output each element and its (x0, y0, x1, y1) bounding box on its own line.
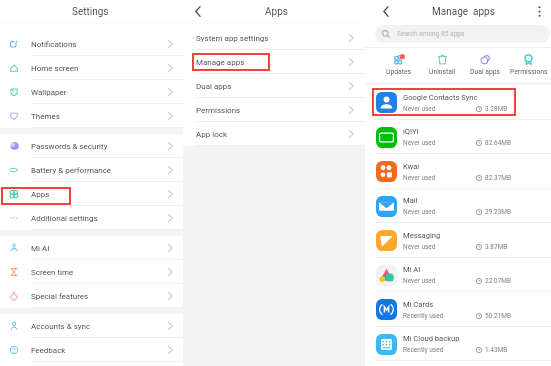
staticText: Permissions (510, 68, 548, 76)
staticText: Permissions (196, 106, 241, 115)
button[interactable]: More options (527, 0, 551, 23)
button[interactable]: Kwai (365, 154, 551, 189)
button[interactable]: Additional settings (0, 206, 183, 230)
staticText: Notifications (31, 40, 77, 49)
staticText: Google Contacts Sync (403, 93, 478, 102)
staticText: Themes (31, 112, 60, 121)
staticText: Never used (403, 139, 436, 147)
staticText: Updates (386, 68, 412, 76)
button[interactable]: Dual apps (464, 48, 507, 82)
staticText: Recently used (403, 346, 444, 354)
staticText: Dual apps (196, 82, 232, 91)
staticText: Mi Cards (403, 300, 434, 309)
button[interactable]: Mail (365, 189, 551, 223)
button[interactable]: Back (183, 0, 201, 23)
button[interactable]: Accounts & sync (0, 314, 183, 338)
staticText: 82.37MB (485, 174, 512, 182)
button[interactable]: Feedback (0, 338, 183, 362)
button[interactable]: Manage apps (183, 50, 365, 74)
button[interactable]: Mi AI (365, 258, 551, 292)
staticText: Manage apps (196, 58, 245, 67)
button[interactable]: Dual apps (183, 74, 365, 98)
staticText: Never used (403, 174, 436, 182)
staticText: App lock (196, 130, 227, 139)
button[interactable]: Permissions (507, 48, 550, 82)
button[interactable]: Wallpaper (0, 80, 183, 104)
staticText: 22.07MB (485, 277, 512, 285)
staticText: 1.43MB (485, 346, 508, 354)
staticText: Apps (265, 6, 288, 18)
button[interactable]: Messaging (365, 223, 551, 258)
staticText: Recently used (403, 312, 444, 320)
staticText: iQIYI (403, 127, 419, 136)
staticText: Special features (31, 292, 89, 301)
button[interactable]: Notifications (0, 32, 183, 56)
button[interactable]: iQIYI (365, 120, 551, 154)
staticText: 3.28MB (485, 105, 508, 113)
staticText: Settings (72, 6, 109, 18)
button[interactable]: Search among 85 apps (375, 25, 550, 43)
staticText: Manage apps (432, 6, 495, 18)
staticText: Battery & performance (31, 166, 112, 175)
button[interactable]: Back (365, 0, 389, 23)
staticText: Dual apps (470, 68, 501, 76)
button[interactable]: Mi Cloud backup (365, 327, 551, 361)
staticText: Never used (403, 277, 436, 285)
staticText: Never used (403, 105, 436, 113)
button[interactable]: Themes (0, 104, 183, 128)
staticText: Mi AI (403, 265, 421, 274)
button[interactable]: Passwords & security (0, 134, 183, 158)
staticText: Search among 85 apps (397, 30, 465, 38)
staticText: 29.23MB (485, 208, 512, 216)
staticText: Wallpaper (31, 88, 67, 97)
staticText: Never used (403, 208, 436, 216)
button[interactable]: Home screen (0, 56, 183, 80)
button[interactable]: Permissions (183, 98, 365, 122)
staticText: 3.87MB (485, 243, 508, 251)
button[interactable]: Uninstall (421, 48, 464, 82)
staticText: Accounts & sync (31, 322, 91, 331)
staticText: Feedback (31, 346, 66, 355)
staticText: 82.64MB (485, 139, 512, 147)
button[interactable]: Screen time (0, 260, 183, 284)
staticText: 50.21MB (485, 312, 512, 320)
button[interactable]: Special features (0, 284, 183, 308)
staticText: Uninstall (429, 68, 456, 76)
staticText: Home screen (31, 64, 79, 73)
button[interactable]: System app settings (183, 26, 365, 50)
button[interactable]: Mi Cards (365, 292, 551, 327)
staticText: Passwords & security (31, 142, 108, 151)
button[interactable]: Google Contacts Sync (365, 85, 551, 120)
button[interactable]: Mi AI (0, 236, 183, 260)
button[interactable]: App lock (183, 122, 365, 146)
staticText: Screen time (31, 268, 74, 277)
staticText: Mail (403, 196, 418, 205)
staticText: Apps (31, 190, 50, 199)
staticText: Never used (403, 243, 436, 251)
staticText: Messaging (403, 231, 441, 240)
button[interactable]: Battery & performance (0, 158, 183, 182)
button[interactable]: Updates (377, 48, 421, 82)
button[interactable]: Apps (0, 182, 183, 206)
staticText: Mi AI (31, 244, 50, 253)
staticText: System app settings (196, 34, 269, 43)
staticText: Kwai (403, 162, 420, 171)
staticText: Additional settings (31, 214, 98, 223)
staticText: Mi Cloud backup (403, 334, 460, 343)
